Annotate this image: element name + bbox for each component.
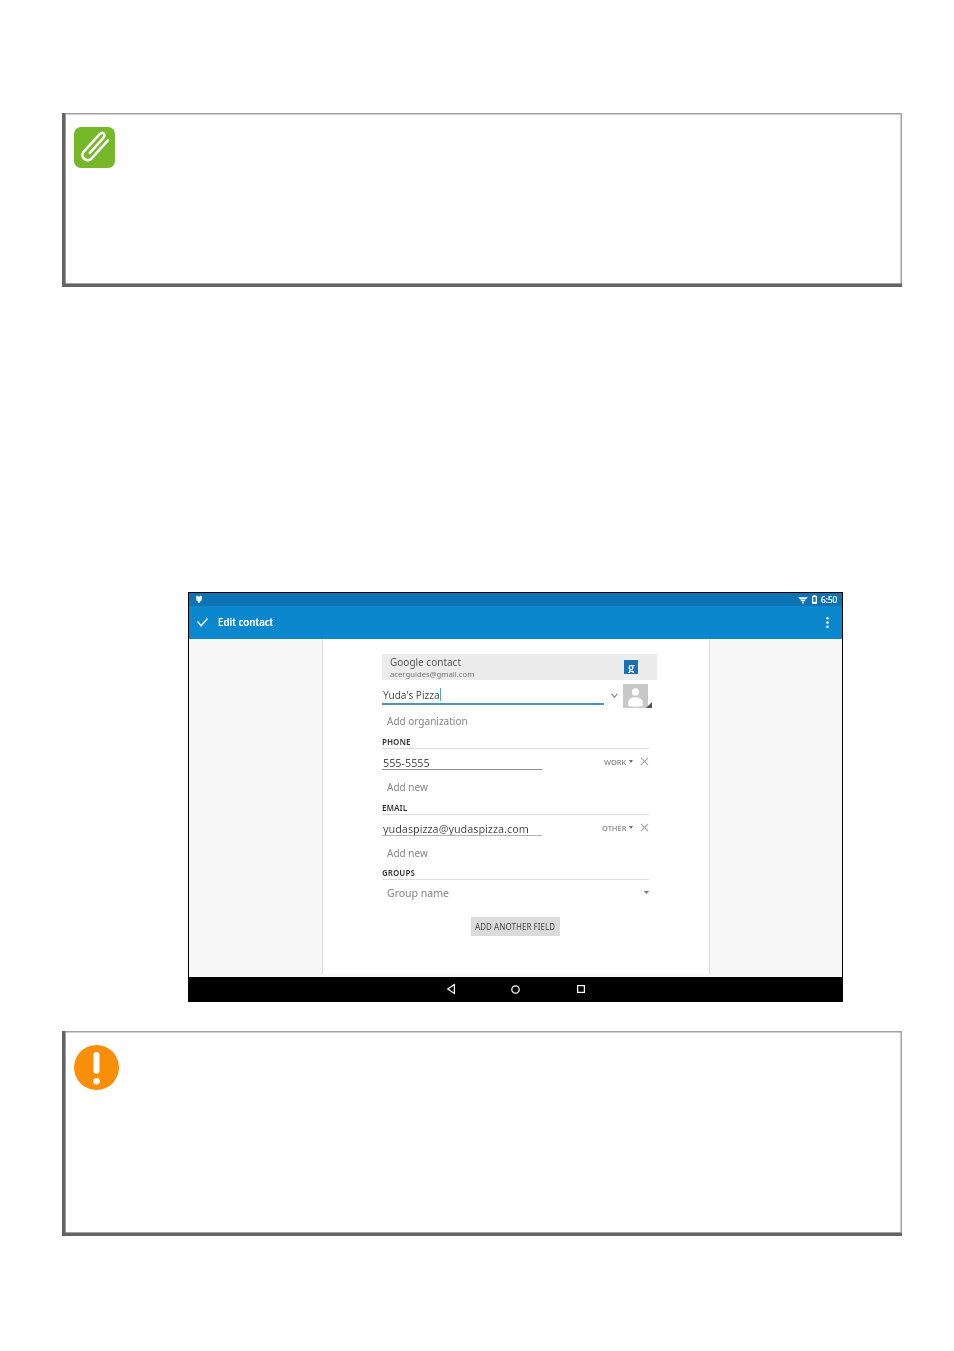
staticText: acerguides@gmail.com	[390, 669, 475, 679]
staticText: Google contact	[390, 655, 462, 669]
button[interactable]: Back	[418, 977, 483, 1001]
staticText: PHONE	[382, 736, 411, 747]
staticText: OTHER	[602, 823, 627, 833]
button[interactable]: Add new	[382, 779, 649, 794]
staticText: Group name	[387, 886, 449, 900]
staticText: Add organization	[387, 714, 468, 728]
button[interactable]: Add new	[382, 845, 649, 860]
staticText: Add new	[387, 846, 428, 860]
button[interactable]: OTHER	[602, 821, 633, 834]
button[interactable]: Google contact	[382, 654, 657, 680]
button[interactable]: More options	[812, 606, 842, 639]
button[interactable]: Recent apps	[548, 977, 613, 1001]
button[interactable]: Add organization	[382, 713, 649, 728]
staticText: 555-5555	[383, 755, 430, 770]
button[interactable]: WORK	[604, 755, 633, 768]
button[interactable]: ADD ANOTHER FIELD	[471, 917, 560, 936]
staticText: EMAIL	[382, 802, 408, 813]
staticText: yudaspizza@yudaspizza.com	[383, 821, 529, 836]
button[interactable]: Save contact	[189, 606, 215, 639]
staticText: WORK	[604, 757, 627, 767]
staticText: Add new	[387, 780, 428, 794]
staticText: g	[628, 659, 635, 673]
button[interactable]: Group name	[382, 885, 649, 900]
staticText: 6:50	[821, 594, 838, 605]
staticText: GROUPS	[382, 867, 415, 878]
staticText: ADD ANOTHER FIELD	[475, 921, 556, 932]
button[interactable]: Remove OTHER	[638, 821, 651, 834]
button[interactable]: Remove WORK	[638, 755, 651, 768]
staticText: Edit contact	[218, 616, 274, 629]
staticText: Yuda's Pizza	[383, 688, 440, 702]
button[interactable]: Home	[483, 977, 548, 1001]
